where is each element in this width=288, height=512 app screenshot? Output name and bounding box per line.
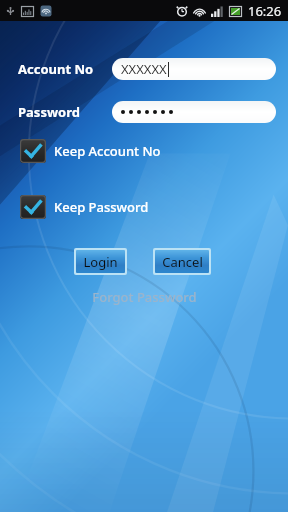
button[interactable]: Keep Password [20,195,149,219]
staticText: 16:26 [248,2,282,20]
button[interactable] [112,101,276,123]
staticText: Cancel [162,253,203,271]
staticText: Keep Account No [54,142,161,160]
button[interactable]: Login [76,250,125,273]
button[interactable]: Forgot Password [84,286,205,308]
staticText: Password [18,103,100,121]
staticText: Login [83,253,118,271]
button[interactable]: Keep Account No [20,139,161,163]
staticText: Account No [18,60,100,78]
staticText: Forgot Password [92,288,197,306]
staticText: Keep Password [54,198,149,216]
button[interactable]: XXXXXX [112,58,276,80]
button[interactable]: Cancel [155,250,209,273]
staticText: XXXXXX [121,60,167,78]
